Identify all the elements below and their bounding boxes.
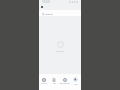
staticText: Search: [45, 12, 53, 15]
button[interactable]: Profile: [70, 75, 81, 87]
staticText: Go: [53, 82, 56, 85]
staticText: Loading: [56, 50, 64, 53]
button[interactable]: Home: [39, 75, 49, 87]
button[interactable]: Contribute: [59, 75, 70, 87]
staticText: Home: [41, 82, 47, 85]
button[interactable]: Go: [49, 75, 59, 87]
staticText: Contribute: [59, 82, 70, 85]
staticText: 10:30: [42, 0, 50, 4]
button[interactable]: App icon: [40, 5, 44, 9]
staticText: You: [74, 83, 78, 86]
button[interactable]: Back: [41, 12, 44, 15]
